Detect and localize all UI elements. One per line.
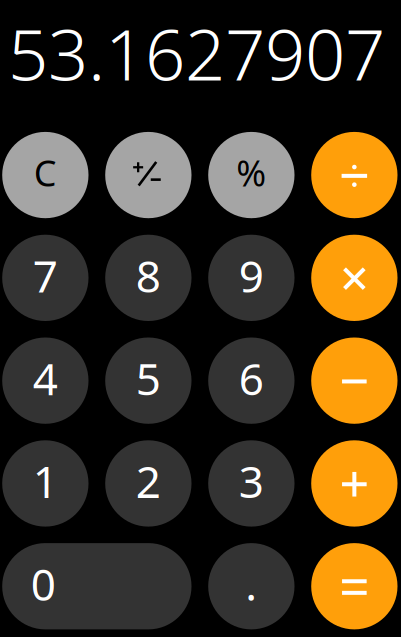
button[interactable]: Subtract (311, 337, 397, 424)
button[interactable]: 3 (208, 440, 294, 527)
staticText: 9 (239, 246, 264, 304)
button[interactable]: 0 (2, 543, 191, 629)
button[interactable]: Equals (311, 543, 397, 629)
staticText: 0 (31, 554, 56, 613)
staticText: 53.1627907 (8, 6, 385, 100)
staticText: % (236, 149, 266, 196)
button[interactable]: Divide (311, 132, 397, 218)
button[interactable]: 5 (105, 337, 191, 424)
staticText: 6 (239, 349, 264, 407)
button[interactable]: % (208, 132, 294, 218)
staticText: 1 (33, 452, 58, 510)
staticText: 3 (239, 452, 264, 510)
staticText: 5 (136, 349, 161, 407)
button[interactable]: 8 (105, 235, 191, 321)
staticText: 2 (136, 452, 161, 510)
button[interactable]: . (208, 543, 294, 629)
button[interactable]: 4 (2, 337, 88, 424)
staticText: C (34, 149, 57, 196)
button[interactable]: 1 (2, 440, 88, 527)
button[interactable]: C (2, 132, 88, 218)
staticText: . (245, 554, 257, 613)
button[interactable]: Add (311, 440, 397, 527)
staticText: 8 (136, 246, 161, 304)
staticText: 7 (33, 246, 58, 304)
button[interactable]: 7 (2, 235, 88, 321)
button[interactable]: 9 (208, 235, 294, 321)
button[interactable]: 2 (105, 440, 191, 527)
button[interactable]: Multiply (311, 235, 397, 321)
button[interactable]: Plus Minus (105, 132, 191, 218)
button[interactable]: 6 (208, 337, 294, 424)
staticText: 4 (33, 349, 58, 407)
